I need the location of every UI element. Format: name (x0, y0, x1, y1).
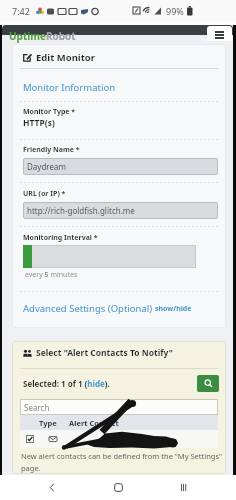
staticText: URL (or IP) * (23, 189, 66, 199)
button[interactable]: Select "Alert Contacts To Notify" (23, 347, 173, 359)
button[interactable]: Recents (171, 475, 196, 500)
button[interactable]: Advanced Settings (Optional) (23, 302, 192, 315)
staticText: 99% (166, 5, 184, 17)
staticText: Advanced Settings (Optional) (23, 302, 155, 315)
staticText: HTTP(s) (23, 117, 55, 129)
button[interactable]: Daydream (23, 158, 218, 175)
staticText: Select "Alert Contacts To Notify" (36, 347, 173, 359)
button[interactable]: Search (20, 399, 218, 415)
button[interactable]: Menu (207, 26, 232, 41)
button[interactable]: Edit Monitor (23, 51, 95, 64)
staticText: Monitor Information (23, 81, 115, 94)
staticText: show/hide (155, 304, 192, 314)
staticText: http://rich-goldfish.glitch.me (27, 205, 135, 216)
staticText: Type (39, 418, 57, 428)
staticText: UptimeRobot (9, 29, 76, 43)
button[interactable]: Selected: 1 of 1 (hide). (23, 378, 110, 389)
staticText: every 5 minutes (25, 270, 78, 280)
staticText: Monitoring Interval * (23, 233, 98, 243)
button[interactable]: http://rich-goldfish.glitch.me (23, 202, 218, 219)
button[interactable]: Search (197, 375, 219, 392)
staticText: Friendly Name * (23, 145, 80, 155)
button[interactable]: Back (40, 475, 65, 500)
staticText: 7:42 (12, 5, 30, 17)
staticText: Edit Monitor (36, 51, 95, 64)
staticText: New alert contacts can be defined from t… (21, 451, 223, 474)
staticText: Alert Contact (69, 418, 119, 428)
staticText: Daydream (27, 161, 66, 172)
staticText: Monitor Type * (23, 107, 76, 117)
staticText: Search (24, 402, 50, 413)
button[interactable] (20, 430, 218, 448)
button[interactable]: Home (106, 475, 131, 500)
